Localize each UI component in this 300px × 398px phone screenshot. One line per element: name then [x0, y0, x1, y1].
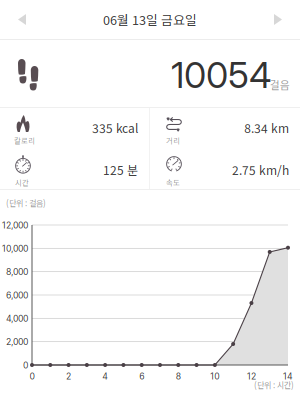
staticText: 거리: [166, 135, 180, 146]
button[interactable]: Next day: [256, 0, 300, 39]
staticText: 6: [139, 371, 144, 381]
button[interactable]: Previous day: [0, 0, 44, 39]
button[interactable]: 거리: [150, 108, 299, 149]
staticText: 06월 13일 금요일: [103, 10, 197, 29]
staticText: 칼로리: [14, 135, 35, 146]
staticText: 6,000: [6, 290, 28, 300]
staticText: 걸음: [270, 77, 290, 92]
staticText: 10054: [171, 53, 272, 97]
staticText: (단위 : 걸음): [6, 197, 46, 209]
staticText: 0: [23, 360, 28, 370]
staticText: 2: [66, 371, 71, 381]
button[interactable]: 칼로리: [0, 108, 149, 149]
staticText: 2.75 km/h: [232, 161, 289, 178]
staticText: 12: [247, 371, 256, 381]
staticText: 8.34 km: [244, 119, 289, 136]
staticText: 2,000: [6, 337, 28, 347]
button[interactable]: 시간: [0, 150, 149, 191]
staticText: 10,000: [2, 243, 28, 254]
staticText: 4,000: [6, 313, 28, 324]
staticText: 10: [210, 371, 219, 381]
staticText: 시간: [15, 177, 29, 188]
staticText: 12,000: [2, 220, 28, 230]
button[interactable]: 06월 13일 금요일: [103, 0, 197, 39]
staticText: 335 kcal: [92, 119, 138, 136]
button[interactable]: 속도: [150, 150, 299, 191]
staticText: 4: [102, 371, 108, 381]
staticText: 14: [283, 371, 293, 381]
staticText: 8,000: [6, 267, 28, 277]
staticText: (단위 : 시간): [254, 379, 294, 391]
staticText: 0: [29, 371, 34, 381]
staticText: 8: [176, 371, 181, 381]
staticText: 속도: [166, 177, 180, 188]
staticText: 125 분: [103, 161, 138, 178]
